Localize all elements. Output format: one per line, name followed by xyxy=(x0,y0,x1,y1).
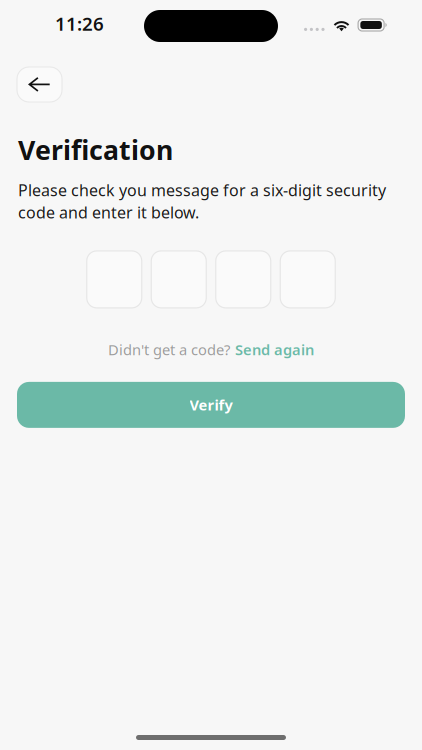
staticText: Didn't get a code? xyxy=(108,340,230,359)
staticText: Please check you message for a six-digit… xyxy=(18,179,386,201)
button[interactable]: Send again xyxy=(235,340,314,359)
button[interactable]: Verify xyxy=(17,382,405,428)
staticText: Verify xyxy=(189,395,232,415)
staticText: code and enter it below. xyxy=(18,202,199,223)
button[interactable]: Code digit 3 xyxy=(216,251,271,308)
staticText: 11:26 xyxy=(55,11,104,36)
button[interactable]: Code digit 2 xyxy=(151,251,206,308)
button[interactable]: Code digit 1 xyxy=(87,251,142,308)
staticText: Send again xyxy=(235,340,314,359)
button[interactable]: Code digit 4 xyxy=(280,251,335,308)
staticText: Verification xyxy=(18,132,173,167)
button[interactable]: Back xyxy=(17,67,62,102)
